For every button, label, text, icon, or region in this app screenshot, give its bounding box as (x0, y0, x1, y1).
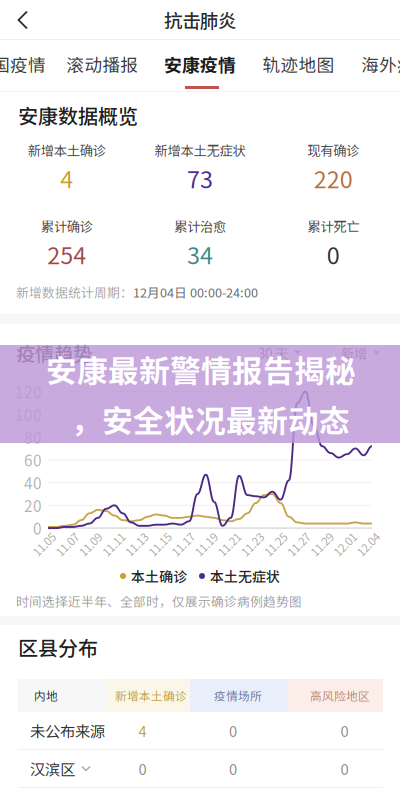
button[interactable]: 国疫情 (0, 40, 66, 92)
staticText: 轨迹地图 (262, 51, 334, 77)
staticText: 0 (340, 720, 348, 741)
staticText: 100 (15, 403, 42, 425)
staticText: 12.04 (354, 536, 381, 552)
staticText: 本土无症状 (210, 566, 280, 586)
staticText: 11.27 (285, 536, 312, 552)
staticText: 220 (314, 161, 353, 195)
staticText: 安康数据概览 (18, 100, 138, 129)
staticText: 11.15 (146, 536, 173, 552)
staticText: 34 (187, 237, 213, 271)
staticText: 0 (340, 758, 348, 779)
button[interactable]: 海外疫 (361, 40, 400, 92)
staticText: 新增数据统计周期： (16, 283, 133, 301)
staticText: 滚动播报 (66, 51, 138, 77)
staticText: 新增本土确诊 (115, 687, 187, 704)
staticText: 11.05 (30, 536, 57, 552)
staticText: 12月04日 00:00-24:00 (133, 283, 258, 301)
staticText: 疫情趋势 (16, 339, 92, 367)
staticText: 80 (24, 426, 42, 448)
staticText: 疫情场所 (214, 687, 262, 704)
staticText: 时间选择近半年、全部时，仅展示确诊病例趋势图 (16, 592, 302, 610)
staticText: 11.07 (54, 536, 81, 552)
staticText: 20 (24, 494, 42, 516)
button[interactable]: 汉滨区 (0, 750, 400, 788)
button[interactable]: 未公布来源 (0, 712, 400, 750)
staticText: 区县分布 (18, 632, 98, 661)
staticText: 现有确诊 (307, 140, 359, 160)
staticText: 安康最新警情报告揭秘 (46, 347, 356, 391)
staticText: ，安全状况最新动态 (71, 397, 350, 441)
staticText: 11.11 (100, 536, 127, 552)
staticText: 累计治愈 (174, 216, 226, 236)
staticText: 0 (138, 758, 146, 779)
staticText: 海外疫 (361, 51, 400, 77)
button[interactable]: 30 天 (250, 340, 309, 366)
button[interactable]: 安康疫情 (164, 40, 240, 92)
staticText: 新增 (341, 343, 367, 363)
button[interactable]: 轨迹地图 (264, 40, 333, 92)
staticText: 安康疫情 (164, 51, 236, 77)
staticText: 0 (327, 237, 340, 271)
staticText: 本土确诊 (131, 566, 187, 586)
staticText: 累计确诊 (41, 216, 93, 236)
staticText: 11.21 (216, 536, 243, 552)
staticText: 11.29 (308, 536, 335, 552)
staticText: 11.09 (77, 536, 104, 552)
staticText: 内地 (34, 687, 58, 704)
staticText: 4 (60, 161, 73, 195)
staticText: 4 (138, 720, 146, 741)
staticText: 11.17 (169, 536, 196, 552)
staticText: 0 (33, 517, 42, 539)
staticText: 11.25 (262, 536, 289, 552)
staticText: 60 (24, 449, 42, 471)
staticText: 汉滨区 (30, 757, 75, 780)
button[interactable]: 返回 (0, 0, 46, 39)
staticText: 30 天 (258, 343, 288, 363)
staticText: 新增本土无症状 (154, 140, 245, 160)
button[interactable]: 新增 (333, 340, 388, 366)
staticText: 12.01 (331, 536, 358, 552)
staticText: 73 (187, 161, 213, 195)
staticText: 11.23 (239, 536, 266, 552)
staticText: 新增本土确诊 (28, 140, 106, 160)
staticText: 254 (47, 237, 86, 271)
staticText: 国疫情 (0, 51, 46, 77)
staticText: 40 (24, 471, 42, 494)
staticText: 抗击肺炎 (164, 7, 236, 33)
button[interactable]: 滚动播报 (68, 40, 137, 92)
staticText: 0 (229, 758, 237, 779)
staticText: 高风险地区 (310, 687, 370, 704)
staticText: 0 (229, 720, 237, 741)
staticText: 120 (15, 380, 42, 403)
staticText: 未公布来源 (30, 719, 105, 742)
staticText: 11.13 (123, 536, 150, 552)
staticText: 累计死亡 (307, 216, 359, 236)
staticText: 11.19 (192, 536, 219, 552)
